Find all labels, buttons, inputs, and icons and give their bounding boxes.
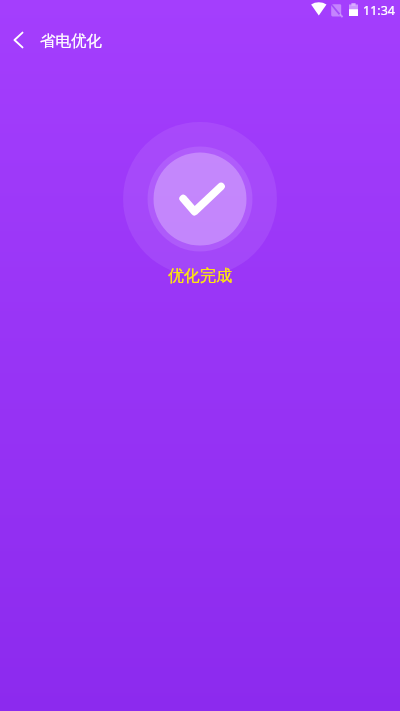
- staticText: 省电优化: [40, 31, 102, 51]
- button[interactable]: 返回: [2, 24, 34, 56]
- staticText: 11:34: [363, 2, 395, 19]
- other: Battery: [349, 3, 358, 16]
- other: Wi-Fi: [308, 0, 328, 20]
- staticText: 优化完成: [168, 266, 232, 286]
- other: No SIM: [330, 3, 343, 17]
- button[interactable]: 优化完成: [122, 121, 278, 277]
